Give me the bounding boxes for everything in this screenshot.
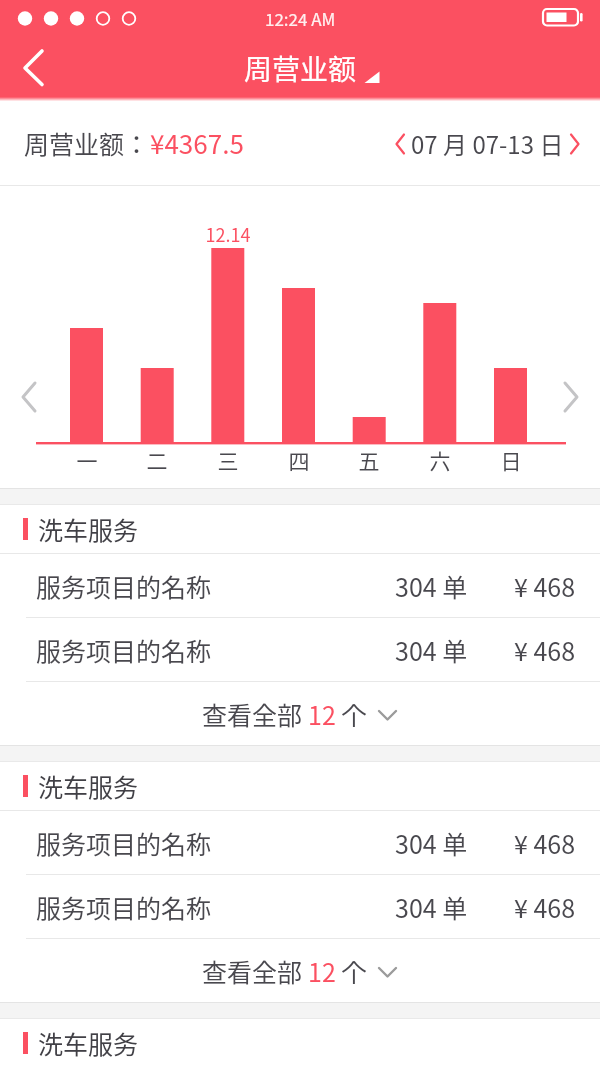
staticText: ¥ 468 (514, 889, 576, 925)
button[interactable] (554, 374, 586, 420)
staticText: 304 单 (395, 889, 468, 925)
button[interactable]: 服务项目的名称 (0, 618, 600, 681)
button[interactable] (14, 374, 46, 420)
staticText: 二 (137, 445, 177, 475)
staticText: 一 (67, 445, 107, 475)
staticText: 四 (279, 445, 319, 475)
staticText: 07 月 07-13 日 (411, 126, 564, 161)
staticText: 个 (336, 953, 367, 989)
staticText: 12 (308, 953, 336, 989)
button[interactable] (10, 43, 58, 95)
staticText: 个 (336, 696, 367, 732)
staticText: 查看全部 (202, 696, 308, 732)
button[interactable]: 洗车服务 (0, 505, 600, 553)
staticText: ¥ 468 (514, 632, 576, 668)
staticText: 服务项目的名称 (36, 632, 212, 668)
button[interactable]: 07 月 07-13 日 (395, 126, 580, 161)
staticText: 304 单 (395, 568, 468, 604)
staticText: ¥4367.5 (150, 124, 244, 162)
staticText: 洗车服务 (38, 768, 139, 804)
staticText: 五 (349, 445, 389, 475)
staticText: 304 单 (395, 632, 468, 668)
staticText: 服务项目的名称 (36, 825, 212, 861)
staticText: 洗车服务 (38, 511, 139, 547)
staticText: 查看全部 (202, 953, 308, 989)
staticText: 12:24 AM (265, 6, 336, 31)
button[interactable]: 服务项目的名称 (0, 554, 600, 617)
staticText: 服务项目的名称 (36, 889, 212, 925)
staticText: ¥ 468 (514, 568, 576, 604)
button[interactable]: 服务项目的名称 (0, 875, 600, 938)
button[interactable]: 服务项目的名称 (0, 811, 600, 874)
staticText: 304 单 (395, 825, 468, 861)
button[interactable]: 洗车服务 (0, 762, 600, 810)
staticText: 六 (420, 445, 460, 475)
button[interactable]: 查看全部 (0, 682, 600, 745)
staticText: 12.14 (188, 221, 268, 247)
button[interactable]: 查看全部 (0, 939, 600, 1002)
staticText: 周营业额： (24, 125, 150, 161)
button[interactable]: 周营业额 (244, 48, 357, 89)
staticText: 服务项目的名称 (36, 568, 212, 604)
staticText: 日 (491, 445, 531, 475)
staticText: 洗车服务 (38, 1025, 139, 1061)
button[interactable]: 洗车服务 (0, 1019, 600, 1067)
staticText: 三 (208, 445, 248, 475)
staticText: ¥ 468 (514, 825, 576, 861)
staticText: 12 (308, 696, 336, 732)
staticText: 周营业额 (244, 48, 357, 89)
